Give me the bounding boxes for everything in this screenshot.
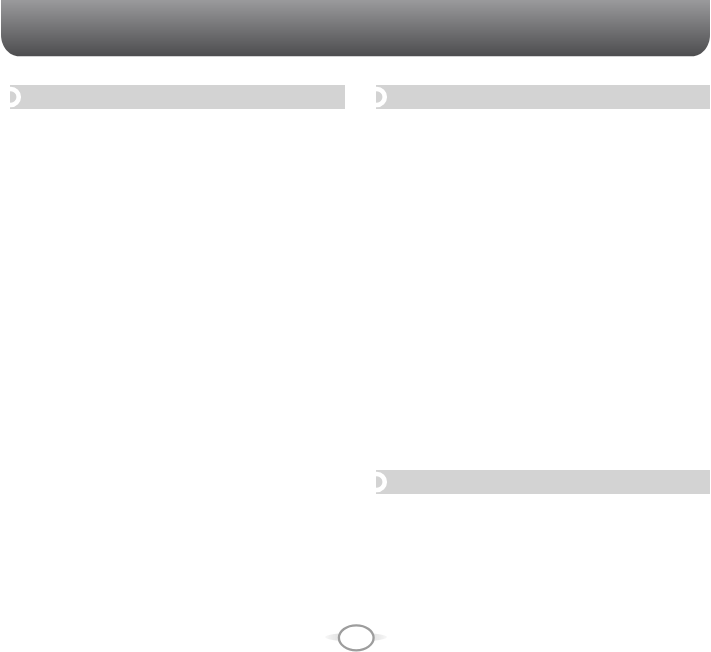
button[interactable]: Top app bar [1, 0, 710, 57]
button[interactable]: Loading [320, 620, 392, 652]
button[interactable]: Loading item 1 [10, 85, 345, 109]
button[interactable]: Loading item 2 [376, 85, 710, 109]
button[interactable]: Loading item 3 [376, 470, 710, 494]
